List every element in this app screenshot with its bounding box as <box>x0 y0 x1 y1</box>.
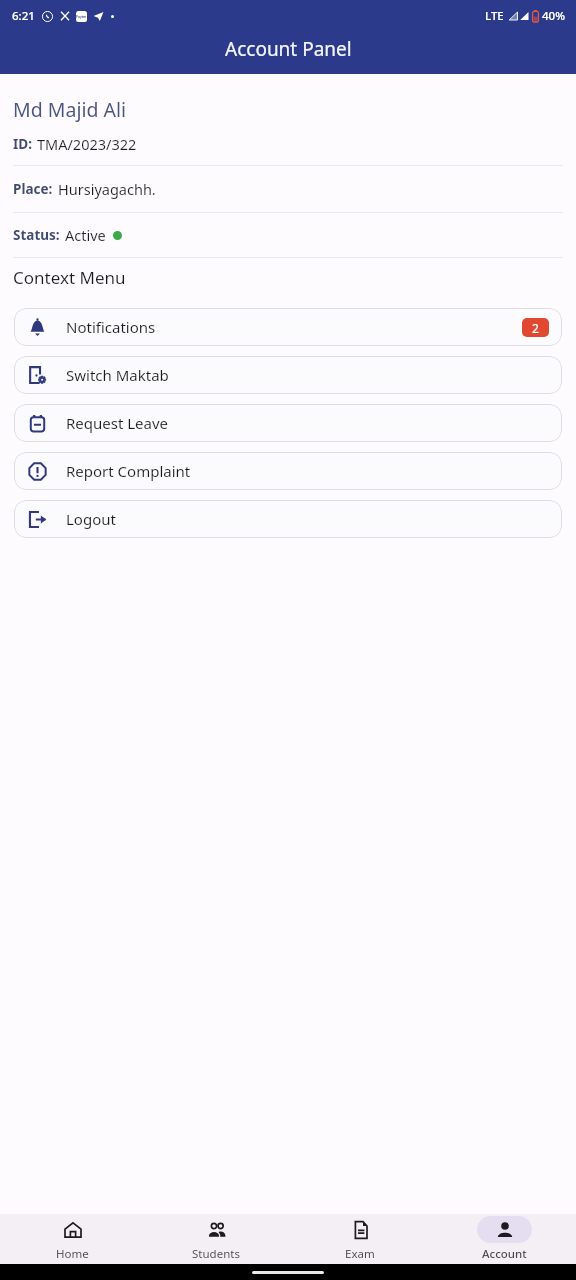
staticText: ID: <box>13 135 32 153</box>
staticText: LTE <box>485 8 504 24</box>
staticText: Home <box>56 1246 89 1262</box>
staticText: Paytm <box>76 15 87 19</box>
staticText: 2 <box>532 320 539 336</box>
button[interactable]: Notifications <box>14 308 562 346</box>
button[interactable]: Exam <box>288 1214 432 1264</box>
button[interactable]: Logout <box>14 500 562 538</box>
staticText: Context Menu <box>13 266 126 289</box>
staticText: Switch Maktab <box>66 365 169 385</box>
staticText: Logout <box>66 509 116 529</box>
staticText: 40% <box>542 8 565 24</box>
staticText: Notifications <box>66 317 156 337</box>
staticText: Active <box>65 225 106 245</box>
staticText: Students <box>192 1246 240 1262</box>
button[interactable]: Switch Maktab <box>14 356 562 394</box>
staticText: Status: <box>13 226 60 244</box>
staticText: Exam <box>345 1246 375 1262</box>
staticText: Account <box>482 1246 527 1262</box>
button[interactable]: Request Leave <box>14 404 562 442</box>
staticText: Place: <box>13 180 53 198</box>
button[interactable]: Home <box>0 1214 144 1264</box>
button[interactable]: Report Complaint <box>14 452 562 490</box>
staticText: Report Complaint <box>66 461 191 481</box>
staticText: Account Panel <box>225 36 352 62</box>
button[interactable]: Students <box>144 1214 288 1264</box>
staticText: 6:21 <box>12 8 35 24</box>
staticText: TMA/2023/322 <box>37 134 137 154</box>
staticText: Hursiyagachh. <box>58 179 156 199</box>
staticText: Request Leave <box>66 413 169 433</box>
button[interactable]: Account <box>432 1214 576 1264</box>
staticText: Md Majid Ali <box>13 96 127 123</box>
